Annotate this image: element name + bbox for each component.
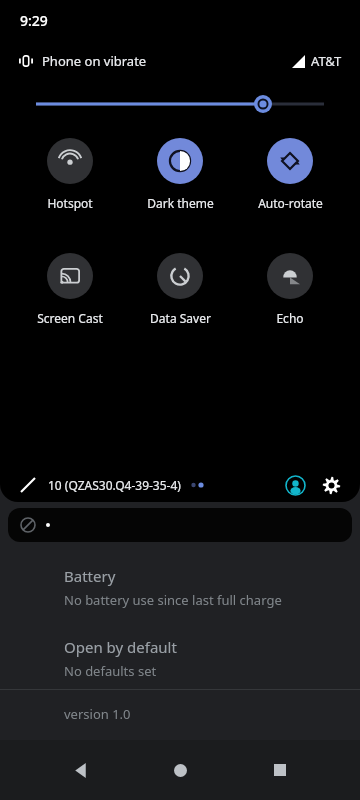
staticText: Echo [276, 310, 304, 326]
staticText: Data Saver [150, 310, 211, 326]
button[interactable]: Back [60, 750, 100, 790]
staticText: 10 (QZAS30.Q4-39-35-4) [48, 477, 181, 493]
staticText: No defaults set [64, 662, 157, 680]
button[interactable]: Echo [238, 253, 342, 326]
staticText: version 1.0 [64, 705, 131, 723]
button[interactable]: Settings [318, 472, 344, 498]
button[interactable]: Data Saver [128, 253, 232, 326]
button[interactable]: Screen Cast [18, 253, 122, 326]
staticText: No battery use since last full charge [64, 591, 282, 609]
button[interactable]: Recents [260, 750, 300, 790]
staticText: Dark theme [147, 195, 214, 211]
button[interactable]: Edit tiles [16, 473, 40, 497]
staticText: Open by default [64, 637, 177, 657]
staticText: Screen Cast [37, 310, 103, 326]
button[interactable]: Auto-rotate [238, 138, 342, 211]
button[interactable] [8, 508, 352, 542]
staticText: Hotspot [47, 195, 93, 211]
staticText: 9:29 [20, 11, 48, 30]
button[interactable]: Dark theme [128, 138, 232, 211]
button[interactable]: Hotspot [18, 138, 122, 211]
staticText: Phone on vibrate [42, 52, 147, 70]
button[interactable]: User [282, 472, 308, 498]
staticText: AT&T [311, 52, 342, 70]
staticText: Battery [64, 566, 116, 586]
staticText: Auto-rotate [258, 195, 323, 211]
button[interactable]: Home [160, 750, 200, 790]
